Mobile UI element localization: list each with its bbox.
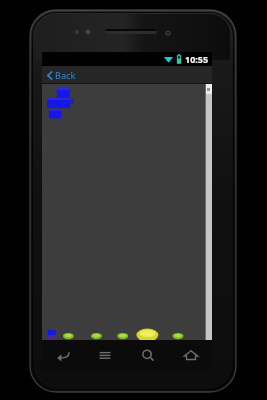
staticText: 10:55 <box>185 53 209 65</box>
button[interactable]: Search <box>126 340 169 370</box>
button[interactable]: Back <box>42 340 84 370</box>
button[interactable]: Menu <box>84 340 126 370</box>
staticText: Back <box>55 69 76 81</box>
button[interactable]: Back <box>42 67 84 83</box>
button[interactable]: Home <box>169 340 212 370</box>
